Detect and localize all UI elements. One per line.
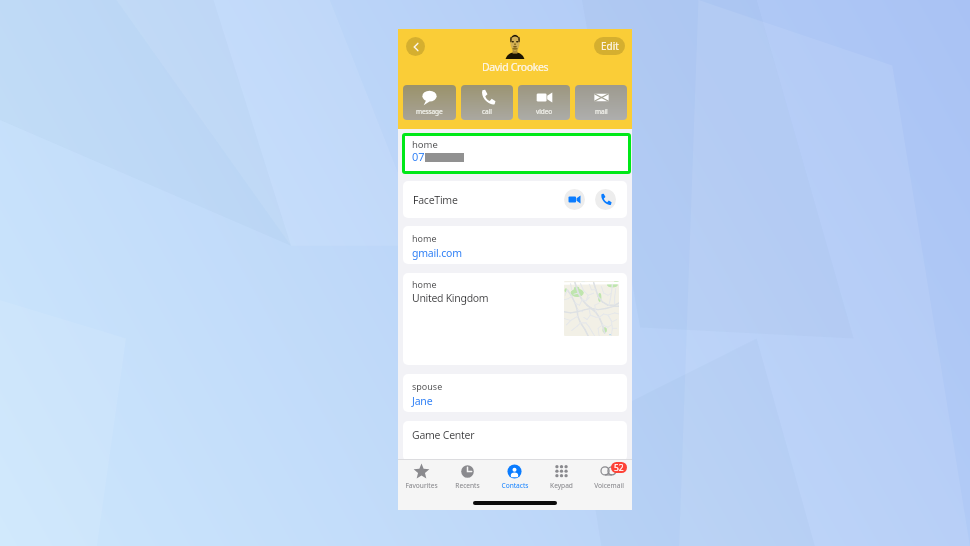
button[interactable]: Game Center	[403, 421, 627, 461]
button[interactable]: home	[403, 226, 627, 264]
staticText: video	[536, 107, 553, 116]
staticText: United Kingdom	[412, 291, 489, 305]
button[interactable]: Keypad	[538, 460, 585, 496]
button[interactable]: FaceTime	[403, 181, 627, 218]
staticText: Recents	[455, 481, 480, 490]
button[interactable]: message	[403, 85, 456, 120]
button[interactable]: spouse	[403, 374, 627, 412]
staticText: Edit	[601, 39, 619, 53]
staticText: David Crookes	[482, 60, 549, 74]
button[interactable]: Back	[406, 37, 425, 56]
button[interactable]: FaceTime audio	[595, 189, 616, 210]
staticText: 52	[614, 462, 624, 473]
staticText: FaceTime	[413, 193, 458, 207]
button[interactable]: Edit	[594, 37, 625, 55]
button[interactable]: Favourites	[398, 460, 444, 496]
staticText: mail	[595, 107, 608, 116]
staticText: home	[412, 232, 437, 244]
button[interactable]: video	[518, 85, 570, 120]
staticText: call	[482, 107, 492, 116]
staticText: spouse	[412, 380, 443, 392]
staticText: home	[412, 138, 438, 151]
staticText: 07	[412, 149, 425, 164]
button[interactable]: home	[403, 273, 627, 365]
button[interactable]: Recents	[444, 460, 491, 496]
button[interactable]: call	[461, 85, 513, 120]
button[interactable]: FaceTime video	[564, 189, 585, 210]
staticText: Voicemail	[594, 481, 624, 490]
staticText: message	[416, 107, 443, 116]
staticText: gmail.com	[412, 246, 462, 260]
staticText: Jane	[412, 394, 433, 408]
button[interactable]: Voicemail	[585, 460, 632, 496]
staticText: Game Center	[412, 428, 475, 442]
button[interactable]: home	[405, 136, 628, 171]
staticText: Contacts	[501, 481, 529, 490]
button[interactable]: mail	[575, 85, 627, 120]
staticText: Favourites	[405, 481, 438, 490]
staticText: home	[412, 278, 437, 290]
staticText: Keypad	[550, 481, 573, 490]
button[interactable]: Contacts	[491, 460, 538, 496]
